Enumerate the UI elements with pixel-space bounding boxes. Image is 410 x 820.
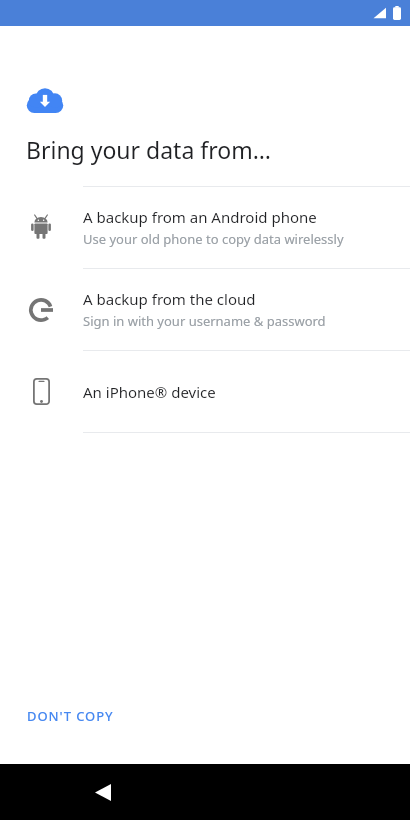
button[interactable]: A backup from the cloud [0, 269, 410, 350]
staticText: A backup from an Android phone [83, 207, 317, 227]
button[interactable]: An iPhone® device [0, 351, 410, 432]
button[interactable]: A backup from an Android phone [0, 187, 410, 268]
staticText: Use your old phone to copy data wireless… [83, 230, 344, 248]
staticText: Sign in with your username & password [83, 312, 326, 330]
staticText: An iPhone® device [83, 382, 216, 402]
staticText: Bring your data from… [26, 134, 271, 165]
button[interactable]: DON'T COPY [14, 698, 127, 734]
staticText: DON'T COPY [27, 707, 114, 725]
staticText: A backup from the cloud [83, 289, 256, 309]
button[interactable]: Back [80, 769, 126, 815]
